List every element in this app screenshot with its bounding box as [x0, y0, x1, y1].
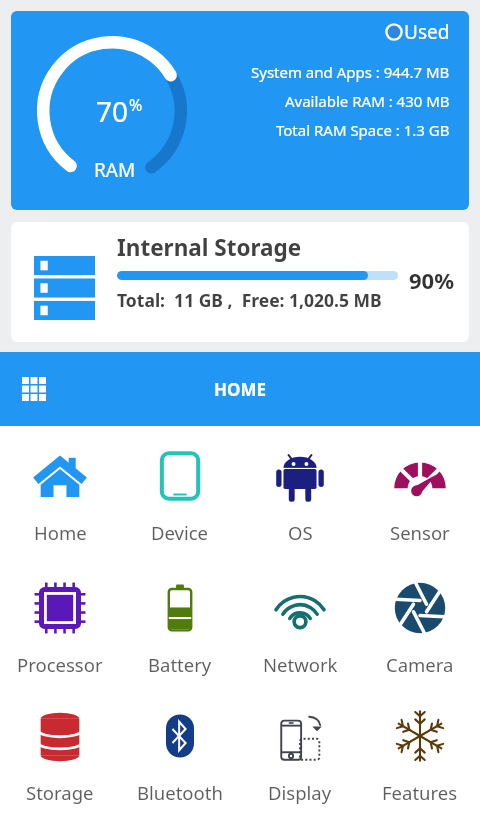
button[interactable]: Network	[240, 562, 360, 694]
staticText: HOME	[214, 378, 267, 401]
button[interactable]: Display	[240, 694, 360, 819]
button[interactable]: Storage	[0, 694, 120, 819]
staticText: %	[129, 94, 143, 116]
button[interactable]: Device	[120, 430, 240, 562]
staticText: Device	[151, 520, 209, 545]
staticText: Battery	[148, 652, 212, 677]
staticText: Processor	[17, 652, 103, 677]
staticText: Network	[263, 652, 338, 677]
button[interactable]: Home	[0, 430, 120, 562]
button[interactable]: Features	[360, 694, 480, 819]
button[interactable]: Sensor	[360, 430, 480, 562]
button[interactable]: Battery	[120, 562, 240, 694]
staticText: RAM	[94, 157, 136, 183]
staticText: Features	[382, 780, 458, 805]
staticText: Camera	[386, 652, 454, 677]
staticText: Total: 11 GB , Free: 1,020.5 MB	[117, 288, 382, 312]
button[interactable]: Processor	[0, 562, 120, 694]
staticText: Total RAM Space : 1.3 GB	[276, 120, 450, 140]
staticText: System and Apps : 944.7 MB	[251, 62, 450, 82]
staticText: Home	[34, 520, 87, 545]
staticText: Bluetooth	[137, 780, 223, 805]
button[interactable]: OS	[240, 430, 360, 562]
staticText: 90%	[409, 265, 455, 295]
staticText: Sensor	[390, 520, 450, 545]
staticText: Internal Storage	[117, 232, 302, 263]
button[interactable]: Apps	[16, 371, 52, 407]
button[interactable]: HOME	[0, 352, 480, 426]
button[interactable]: Bluetooth	[120, 694, 240, 819]
staticText: OS	[288, 520, 313, 545]
staticText: Display	[268, 780, 332, 805]
staticText: Available RAM : 430 MB	[285, 91, 450, 111]
staticText: 70	[96, 92, 129, 130]
staticText: Used	[404, 19, 450, 45]
staticText: Storage	[26, 780, 94, 805]
button[interactable]: Camera	[360, 562, 480, 694]
